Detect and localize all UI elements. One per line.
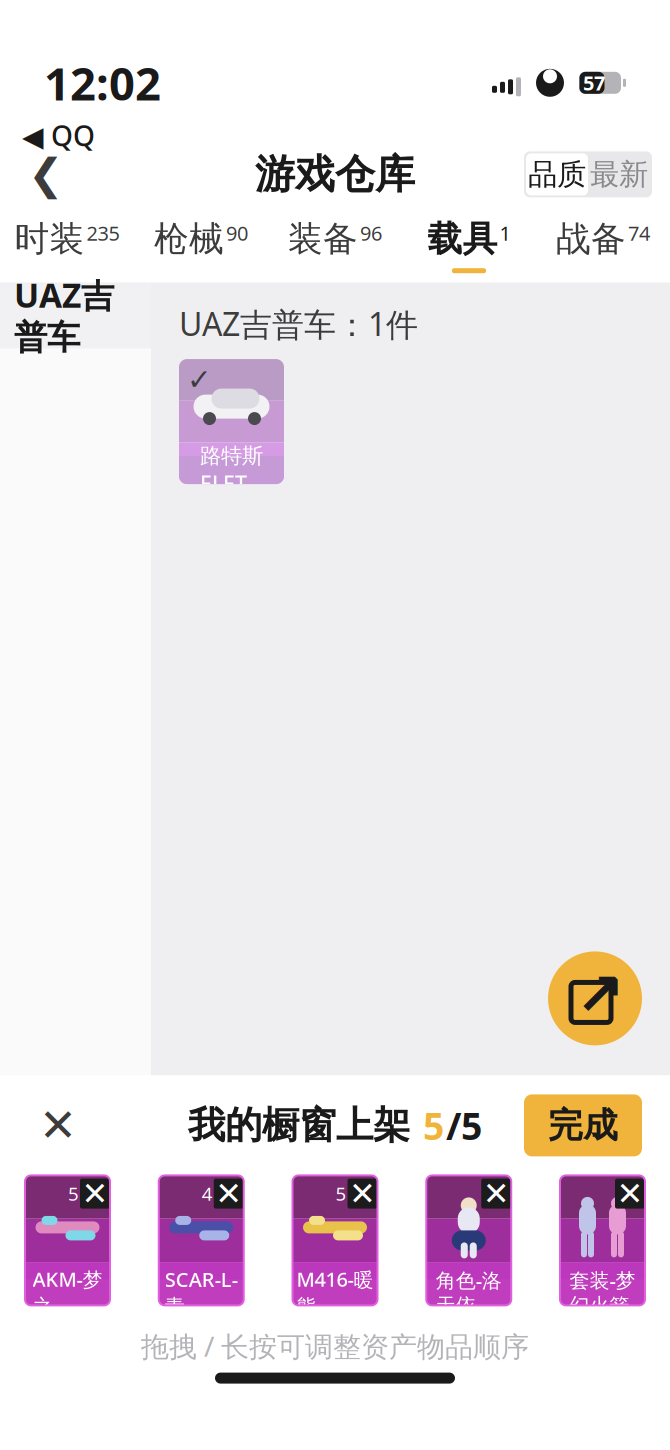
button[interactable]: 品质 [526, 153, 588, 195]
staticText: 4 [202, 1181, 213, 1206]
button[interactable]: 时装 [0, 210, 134, 282]
staticText: ✕ [483, 1175, 510, 1212]
staticText: M416-暖熊… [296, 1266, 373, 1319]
staticText: AKM-梦之… [32, 1266, 102, 1319]
button[interactable]: 4 [159, 1175, 244, 1305]
staticText: 5 [335, 1181, 346, 1206]
button[interactable]: 载具 [402, 210, 536, 282]
button[interactable]: 最新 [588, 153, 650, 195]
staticText: ✕ [215, 1175, 242, 1212]
button[interactable]: UAZ吉普车 [0, 282, 151, 348]
button[interactable]: 返回 [18, 146, 74, 202]
staticText: 57 [583, 69, 605, 96]
staticText: SCAR-L-青… [165, 1266, 238, 1319]
staticText: 载具 [427, 218, 497, 260]
button[interactable]: 完成 [524, 1094, 642, 1156]
staticText: ◀ QQ [22, 117, 95, 154]
button[interactable]: 分享 [548, 951, 642, 1045]
button[interactable]: ✓ [179, 359, 284, 484]
staticText: ✕ [81, 1175, 108, 1212]
staticText: UAZ吉普车 [14, 273, 114, 358]
staticText: 完成 [548, 1104, 618, 1147]
staticText: UAZ吉普车：1件 [179, 302, 418, 345]
button[interactable]: ✕ [560, 1175, 645, 1305]
staticText: 74 [628, 220, 650, 246]
staticText: 我的橱窗上架 [188, 1102, 421, 1148]
button[interactable]: 装备 [268, 210, 402, 282]
staticText: 最新 [590, 156, 648, 192]
staticText: ❮ [28, 150, 64, 199]
staticText: 路特斯ELET… [200, 443, 263, 497]
button[interactable]: 关闭 [28, 1095, 88, 1155]
button[interactable]: 战备 [536, 210, 670, 282]
staticText: 时装 [14, 218, 84, 260]
staticText: 96 [360, 220, 382, 246]
staticText: 5 [68, 1181, 79, 1206]
staticText: 角色-洛天依 [436, 1267, 502, 1318]
staticText: 拖拽 / 长按可调整资产物品顺序 [141, 1327, 529, 1365]
staticText: 90 [226, 220, 248, 246]
staticText: 枪械 [154, 218, 224, 260]
staticText: 品质 [528, 156, 586, 192]
button[interactable]: 5 [25, 1175, 110, 1305]
button[interactable]: 枪械 [134, 210, 268, 282]
staticText: 12:02 [44, 53, 161, 113]
staticText: ↗ [575, 961, 624, 1028]
staticText: 1 [499, 220, 510, 246]
staticText: /5 [446, 1101, 482, 1150]
staticText: ✕ [616, 1175, 643, 1212]
staticText: 235 [86, 220, 119, 246]
button[interactable]: ✕ [426, 1175, 511, 1305]
staticText: 装备 [288, 218, 358, 260]
button[interactable]: 5 [292, 1175, 377, 1305]
staticText: 5 [423, 1101, 444, 1150]
staticText: ✓ [187, 363, 212, 396]
staticText: 战备 [556, 218, 626, 260]
staticText: 套装-梦幻火箭 [569, 1267, 635, 1318]
staticText: 游戏仓库 [255, 150, 415, 199]
staticText: ✕ [349, 1175, 376, 1212]
staticText: ✕ [39, 1100, 77, 1151]
